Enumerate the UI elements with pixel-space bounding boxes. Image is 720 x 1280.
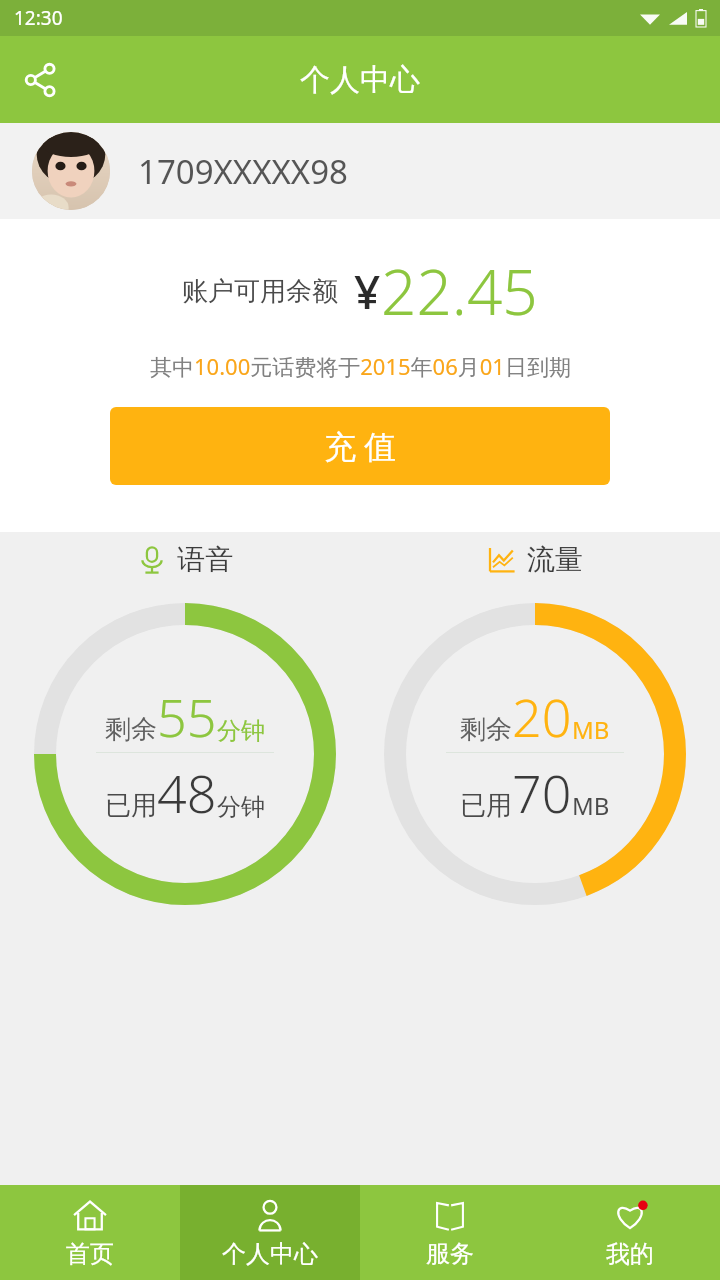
staticText: MB (572, 789, 610, 822)
staticText: 12:30 (14, 5, 63, 31)
staticText: 剩余 (105, 713, 157, 746)
staticText: ¥ (354, 260, 381, 323)
staticText: 20 (512, 681, 572, 752)
staticText: 48 (157, 757, 217, 828)
staticText: 个人中心 (300, 61, 420, 99)
staticText: 22.45 (381, 249, 538, 333)
button[interactable]: 我的 (540, 1185, 720, 1280)
staticText: 我的 (606, 1239, 654, 1269)
staticText: 剩余 (460, 713, 512, 746)
staticText: 个人中心 (222, 1239, 318, 1269)
button[interactable]: 个人中心 (180, 1185, 360, 1280)
button[interactable]: 服务 (360, 1185, 540, 1280)
staticText: MB (572, 713, 610, 746)
staticText: 语音 (177, 542, 233, 577)
staticText: 服务 (426, 1239, 474, 1269)
staticText: 其中10.00元话费将于2015年06月01日到期 (150, 351, 571, 381)
button[interactable]: 1709XXXXX98 (0, 123, 720, 219)
staticText: 分钟 (217, 716, 265, 746)
button[interactable]: 流量 (370, 542, 700, 905)
button[interactable]: 充 值 (110, 407, 610, 485)
staticText: 分钟 (217, 792, 265, 822)
staticText: 流量 (527, 542, 583, 577)
staticText: 已用 (460, 789, 512, 822)
staticText: 55 (157, 681, 217, 752)
staticText: 账户可用余额 (182, 275, 338, 308)
staticText: 已用 (105, 789, 157, 822)
button[interactable]: 首页 (0, 1185, 180, 1280)
staticText: 70 (512, 757, 572, 828)
button[interactable]: 语音 (20, 542, 350, 905)
staticText: 首页 (66, 1239, 114, 1269)
staticText: 充 值 (324, 424, 397, 468)
button[interactable]: Share (12, 51, 70, 109)
staticText: 1709XXXXX98 (138, 149, 348, 194)
